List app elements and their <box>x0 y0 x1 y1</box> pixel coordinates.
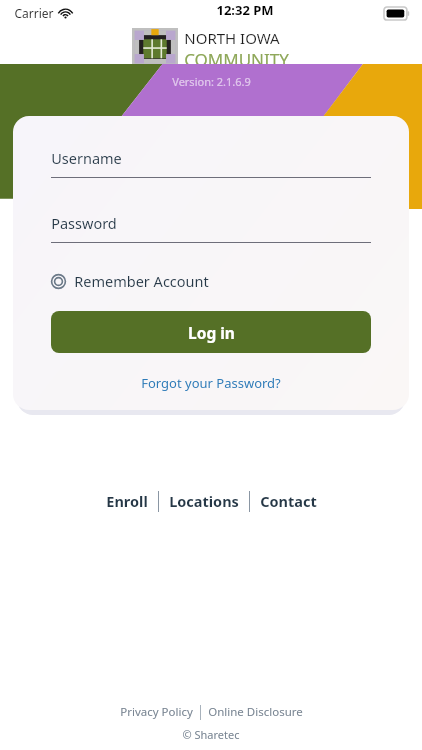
staticText: Log in <box>188 322 235 343</box>
button[interactable]: Log in <box>51 311 371 353</box>
staticText: Username <box>51 148 122 168</box>
staticText: Enroll <box>106 491 148 511</box>
staticText: Privacy Policy <box>120 704 193 720</box>
button[interactable]: Username <box>51 148 371 178</box>
button[interactable]: Locations <box>159 486 249 516</box>
staticText: Password <box>51 213 117 233</box>
button[interactable]: Password <box>51 213 371 243</box>
button[interactable]: Online Disclosure <box>201 702 310 722</box>
staticText: © Sharetec <box>182 727 240 742</box>
staticText: Forgot your Password? <box>141 374 281 392</box>
button[interactable]: Privacy Policy <box>113 702 200 722</box>
staticText: 12:32 PM <box>216 1 274 19</box>
staticText: Locations <box>169 491 239 511</box>
staticText: COMMUNITY <box>184 48 289 66</box>
button[interactable]: Forgot your Password? <box>135 371 287 395</box>
staticText: NORTH IOWA <box>184 28 280 48</box>
staticText: Carrier <box>14 5 54 21</box>
staticText: Remember Account <box>74 271 209 291</box>
staticText: Contact <box>260 491 317 511</box>
button[interactable]: Enroll <box>96 486 158 516</box>
button[interactable]: Contact <box>250 486 327 516</box>
staticText: Online Disclosure <box>208 704 303 720</box>
staticText: Version: 2.1.6.9 <box>172 74 251 89</box>
button[interactable]: Remember Account <box>51 271 209 291</box>
